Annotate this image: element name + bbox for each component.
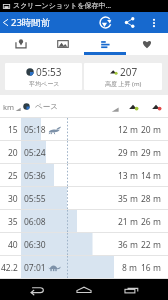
staticText: 23時間前 [11, 16, 51, 29]
button[interactable]: 40 [0, 233, 168, 256]
staticText: 8 m [122, 262, 138, 274]
staticText: 15 [8, 124, 18, 136]
staticText: 22 m [141, 239, 161, 251]
button[interactable]: 23時間前 [0, 12, 55, 33]
staticText: 35 [8, 216, 18, 228]
staticText: 30 [8, 193, 18, 205]
staticText: 05:24 [24, 147, 46, 159]
staticText: 05:18 [24, 124, 46, 136]
staticText: 26 m [141, 216, 161, 228]
staticText: 高度 上昇 (m) [105, 80, 142, 88]
staticText: 05:53 [36, 65, 62, 79]
staticText: 207 [120, 65, 138, 79]
staticText: 40 [8, 239, 18, 251]
staticText: 07:01 [24, 262, 46, 274]
staticText: 28 m [141, 193, 161, 205]
staticText: km [3, 102, 15, 112]
staticText: 05:55 [24, 193, 46, 205]
button[interactable]: 15 [0, 118, 168, 141]
button[interactable]: Stats [84, 33, 126, 55]
staticText: 20 m [141, 124, 161, 136]
staticText: 36 m [118, 239, 138, 251]
staticText: 12 m [118, 124, 138, 136]
staticText: ペース [35, 102, 58, 111]
button[interactable]: Back [26, 279, 48, 300]
staticText: 06:08 [24, 216, 46, 228]
button[interactable]: 30 [0, 187, 168, 210]
button[interactable]: 42.2 [0, 256, 168, 279]
staticText: 平均ペース [29, 80, 60, 88]
button[interactable]: 25 [0, 164, 168, 187]
button[interactable]: Home [73, 279, 95, 300]
staticText: 21 m [118, 216, 138, 228]
staticText: 25 [8, 170, 18, 182]
staticText: 05:36 [24, 170, 46, 182]
staticText: 29 m [141, 147, 161, 159]
staticText: 14 m [141, 170, 161, 182]
button[interactable]: Map [0, 33, 42, 55]
staticText: 42.2 [1, 262, 18, 274]
button[interactable]: 20 [0, 141, 168, 164]
staticText: 16 m [141, 262, 161, 274]
button[interactable]: 05:53 [5, 63, 82, 90]
button[interactable]: Recents [121, 279, 143, 300]
button[interactable]: Share [119, 12, 140, 33]
staticText: 13 m [118, 170, 138, 182]
button[interactable]: Favourite [126, 33, 168, 55]
staticText: 06:30 [24, 239, 46, 251]
staticText: 20 [8, 147, 18, 159]
staticText: 29 m [118, 147, 138, 159]
staticText: スクリーンショットを保存中… [13, 1, 112, 11]
button[interactable]: Photos [42, 33, 84, 55]
button[interactable]: 207 [84, 63, 162, 90]
staticText: 35 m [118, 193, 138, 205]
button[interactable]: 35 [0, 210, 168, 233]
button[interactable]: Sync [95, 12, 116, 33]
button[interactable]: More options [145, 14, 163, 32]
